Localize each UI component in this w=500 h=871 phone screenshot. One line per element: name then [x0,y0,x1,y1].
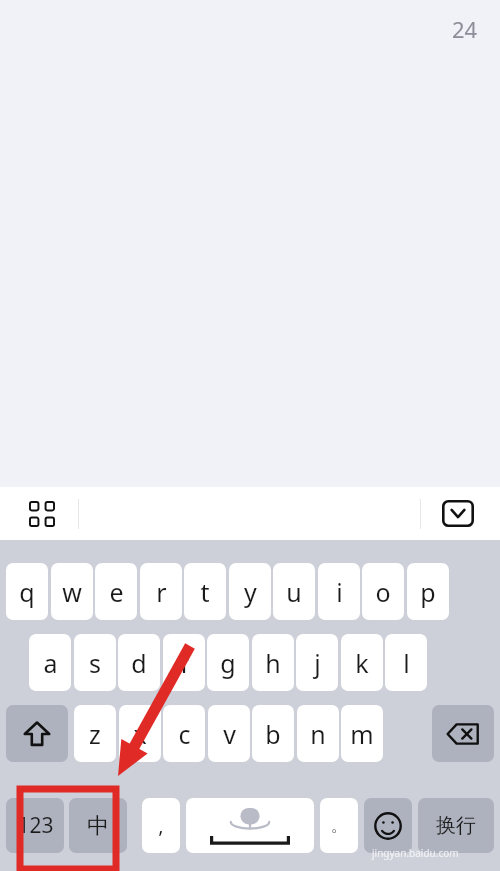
button[interactable]: Space, voice input [186,798,314,853]
staticText: a [43,646,58,680]
staticText: g [220,646,236,680]
button[interactable]: n [297,705,339,762]
button[interactable]: , [142,798,180,853]
button[interactable]: b [252,705,294,762]
staticText: i [336,575,343,609]
staticText: 中 [87,812,109,840]
button[interactable]: Backspace [432,705,494,762]
button[interactable]: h [252,634,294,691]
staticText: n [310,717,326,751]
staticText: d [131,646,147,680]
button[interactable]: c [163,705,205,762]
button[interactable]: Emoji [364,798,412,853]
staticText: jingyan.baidu.com [372,846,459,860]
staticText: c [178,717,191,751]
button[interactable]: g [207,634,249,691]
staticText: o [375,575,391,609]
staticText: l [403,646,410,680]
button[interactable]: Keyboard layouts [20,498,64,530]
button[interactable]: x [119,705,161,762]
button[interactable]: Shift [6,705,68,762]
button[interactable]: 123 [6,798,64,853]
staticText: b [265,717,281,751]
staticText: , [158,812,164,839]
button[interactable]: e [95,563,137,620]
staticText: p [420,575,436,609]
staticText: e [109,575,124,609]
button[interactable]: a [29,634,71,691]
button[interactable]: u [273,563,315,620]
button[interactable]: w [51,563,93,620]
button[interactable]: 。 [320,798,358,853]
button[interactable]: d [118,634,160,691]
button[interactable]: o [362,563,404,620]
staticText: q [19,575,35,609]
button[interactable]: z [74,705,116,762]
staticText: y [244,575,257,609]
staticText: v [223,717,236,751]
button[interactable]: k [341,634,383,691]
button[interactable]: s [74,634,116,691]
button[interactable]: y [229,563,271,620]
button[interactable]: m [341,705,383,762]
button[interactable]: i [318,563,360,620]
staticText: z [89,717,101,751]
staticText: h [265,646,281,680]
button[interactable]: j [296,634,338,691]
staticText: r [156,575,167,609]
staticText: j [314,646,321,680]
staticText: s [89,646,101,680]
staticText: w [62,575,82,609]
button[interactable]: q [6,563,48,620]
staticText: 换行 [436,813,476,838]
button[interactable]: f [163,634,205,691]
staticText: 123 [17,811,54,840]
staticText: m [350,717,374,751]
staticText: 24 [452,14,478,44]
button[interactable]: r [140,563,182,620]
button[interactable]: p [407,563,449,620]
staticText: f [180,646,189,680]
staticText: x [133,717,147,751]
button[interactable]: 换行 [418,798,494,853]
staticText: k [355,646,369,680]
button[interactable]: v [208,705,250,762]
staticText: u [286,575,302,609]
button[interactable]: l [385,634,427,691]
button[interactable]: Hide keyboard [442,500,474,527]
button[interactable]: 中 [69,798,127,853]
button[interactable]: t [184,563,226,620]
staticText: t [200,575,210,609]
staticText: 。 [331,816,347,836]
